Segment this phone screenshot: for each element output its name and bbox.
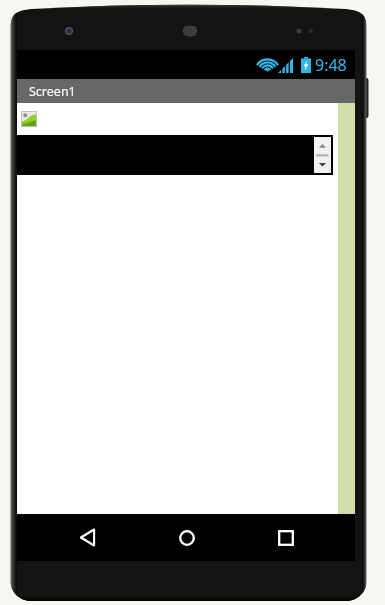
button[interactable]: Recent apps (262, 514, 310, 561)
button[interactable]: Home (163, 514, 211, 561)
staticText: 9:48 (315, 54, 347, 76)
staticText: Screen1 (29, 83, 76, 100)
button[interactable]: Back (63, 514, 111, 561)
button[interactable]: Screen1 (17, 79, 355, 103)
button[interactable]: Spinner (17, 135, 333, 175)
button[interactable]: Spinner (314, 137, 331, 173)
